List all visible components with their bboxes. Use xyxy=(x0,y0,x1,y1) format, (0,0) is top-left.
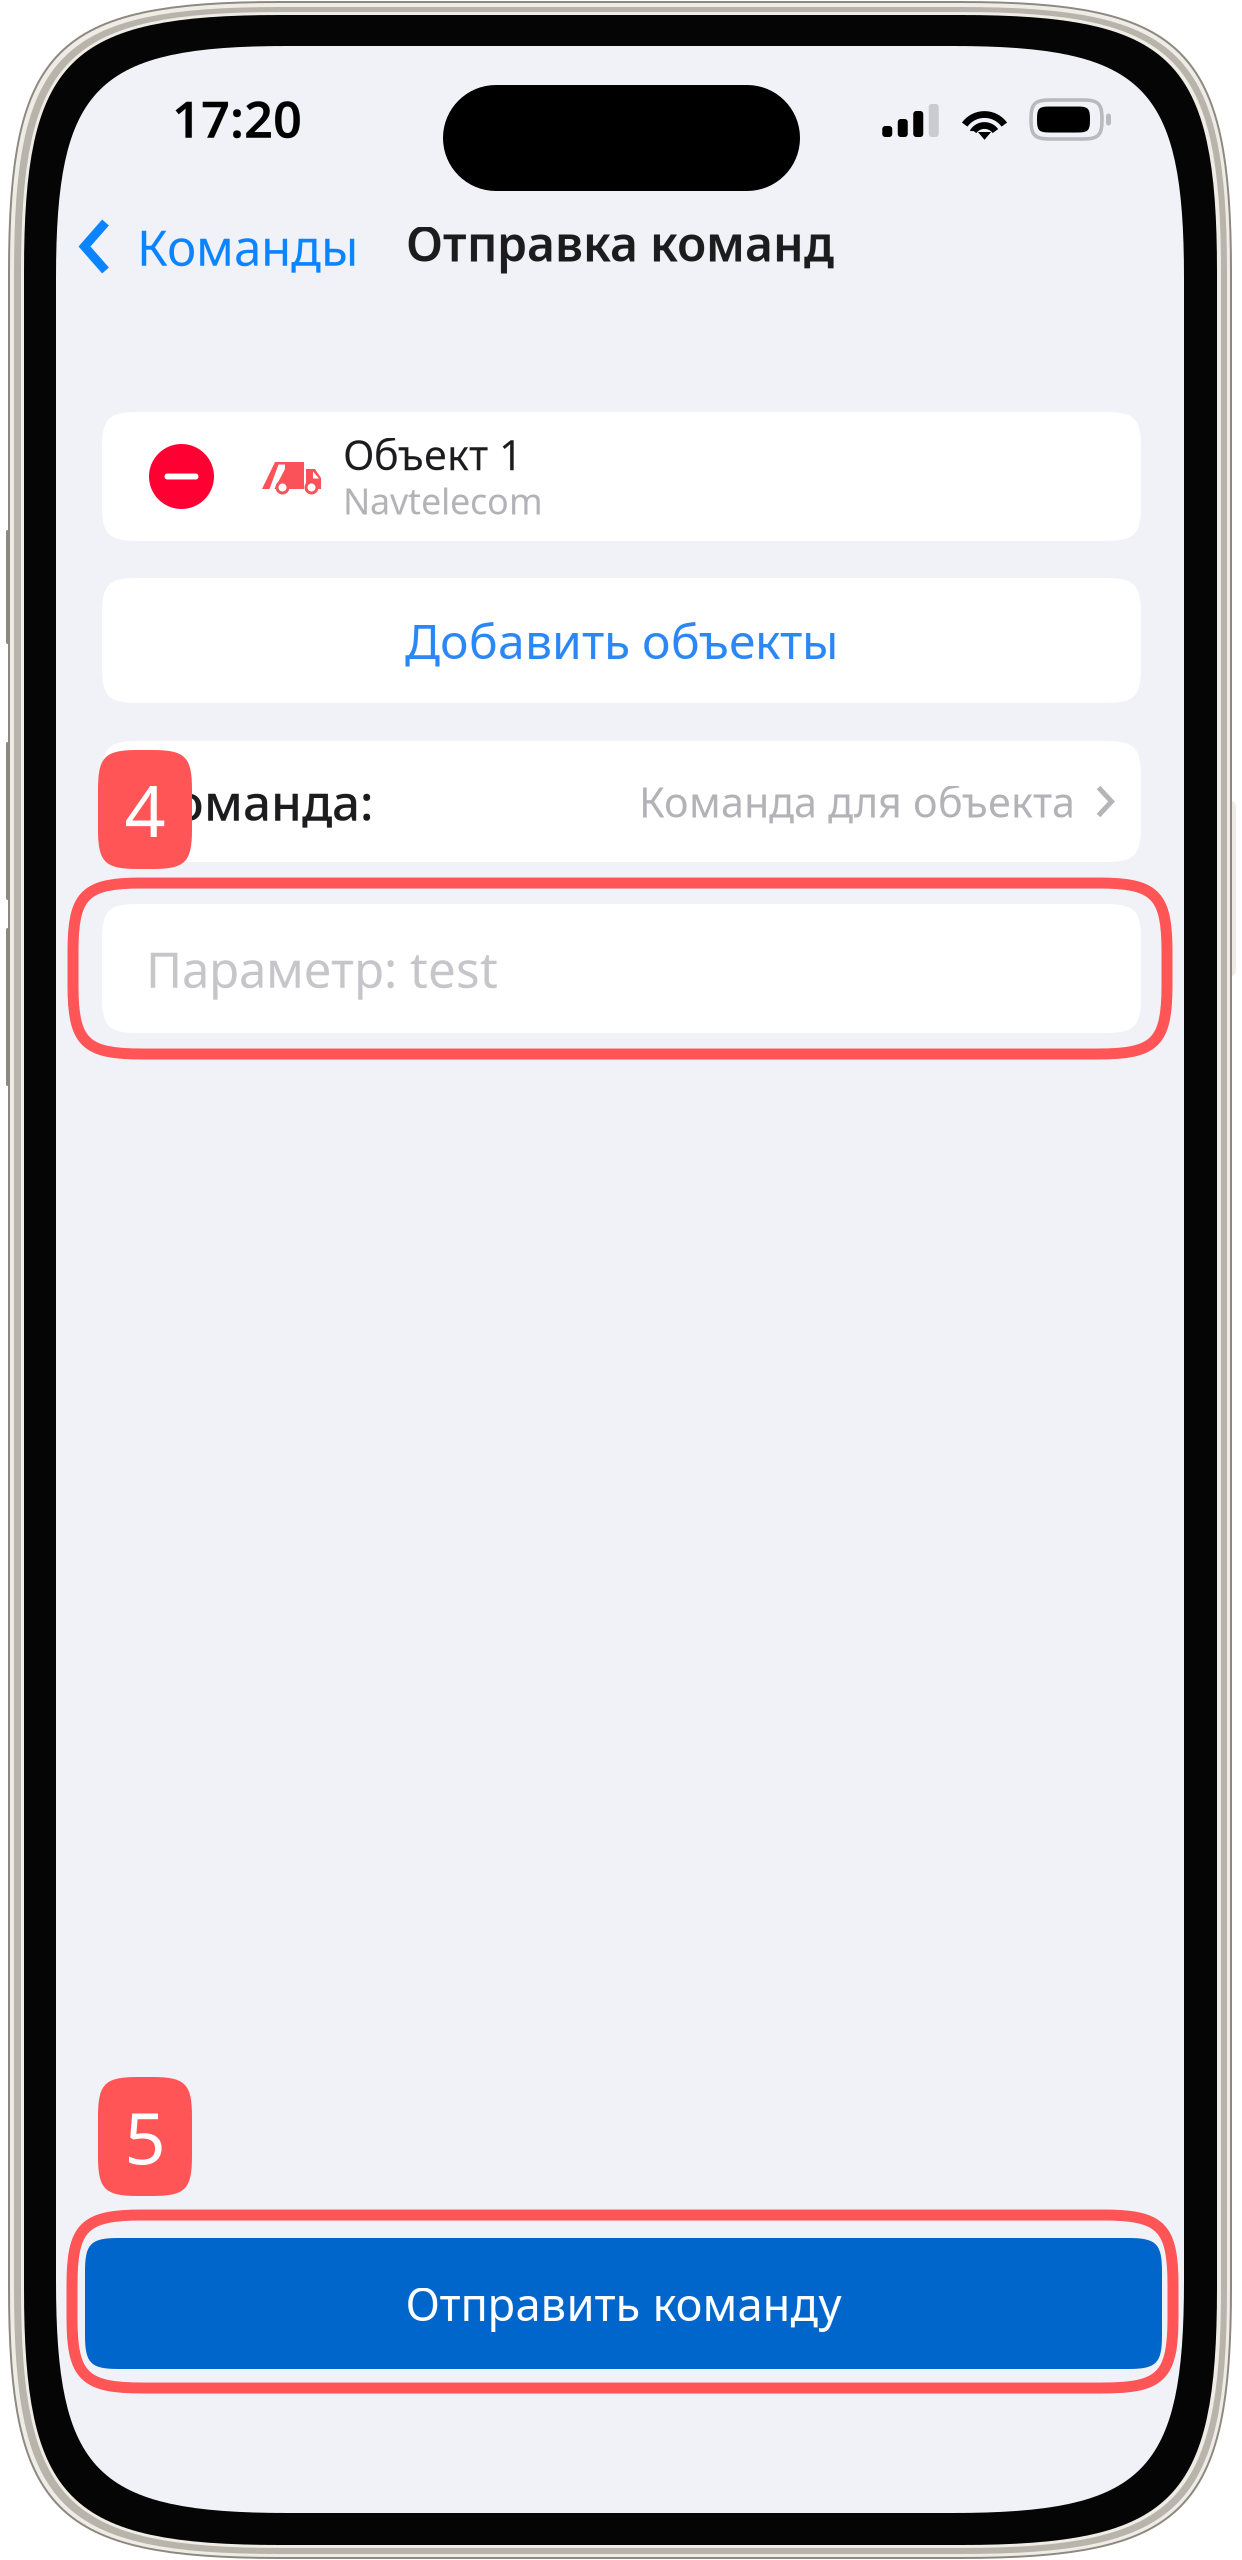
staticText: Navtelecom xyxy=(343,476,543,524)
staticText: Параметр: test xyxy=(146,936,498,1001)
staticText: Команды xyxy=(137,214,358,279)
button[interactable]: Команды xyxy=(56,204,372,289)
staticText: Отправка команд xyxy=(406,211,834,275)
button[interactable]: Команда: xyxy=(102,741,1141,862)
staticText: Команда для объекта xyxy=(639,774,1075,829)
staticText: Объект 1 xyxy=(343,427,523,482)
staticText: 5 xyxy=(124,2089,165,2184)
staticText: Отправить команду xyxy=(405,2273,841,2334)
staticText: 17:20 xyxy=(172,84,302,152)
button[interactable]: Отправить команду xyxy=(85,2238,1162,2369)
staticText: Команда: xyxy=(143,769,373,834)
staticText: 4 xyxy=(124,762,165,857)
staticText: Добавить объекты xyxy=(405,609,838,672)
button[interactable]: Добавить объекты xyxy=(102,578,1141,703)
